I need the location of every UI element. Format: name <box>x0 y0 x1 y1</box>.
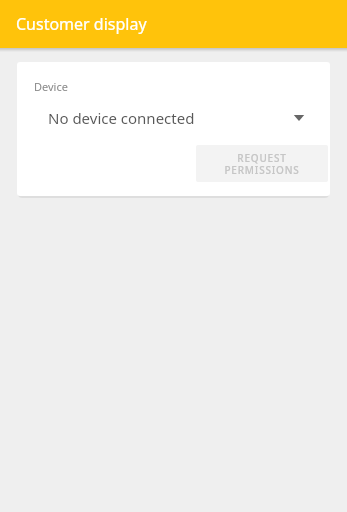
other: Open device list <box>293 112 305 124</box>
staticText: REQUEST PERMISSIONS <box>224 151 300 177</box>
staticText: No device connected <box>48 108 195 128</box>
button[interactable]: No device connected <box>17 104 330 131</box>
staticText: Device <box>34 79 68 94</box>
staticText: Customer display <box>16 13 147 35</box>
button[interactable]: REQUEST PERMISSIONS <box>196 145 328 182</box>
